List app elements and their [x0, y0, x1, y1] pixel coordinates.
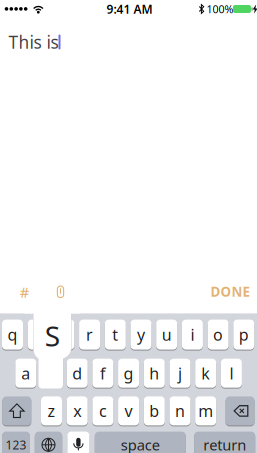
button[interactable] — [0, 0, 257, 453]
staticText: m — [198, 400, 213, 421]
staticText: x — [73, 400, 81, 421]
button[interactable]: t — [0, 0, 257, 453]
staticText: d — [72, 363, 82, 384]
button[interactable]: a — [0, 0, 257, 453]
button[interactable] — [0, 0, 257, 453]
staticText: n — [175, 400, 185, 421]
staticText: 100% — [206, 2, 233, 16]
staticText: l — [229, 363, 233, 384]
staticText: o — [213, 324, 223, 345]
staticText: r — [86, 324, 93, 345]
button[interactable]: o — [0, 0, 257, 453]
button[interactable]: u — [0, 0, 257, 453]
button[interactable]: space — [0, 0, 257, 453]
button[interactable]: v — [0, 0, 257, 453]
staticText: y — [137, 324, 145, 345]
staticText: f — [100, 363, 106, 384]
button[interactable] — [0, 0, 257, 453]
button[interactable]: DONE — [0, 0, 257, 453]
button[interactable]: n — [0, 0, 257, 453]
button[interactable]: p — [0, 0, 257, 453]
staticText: g — [124, 363, 134, 384]
button[interactable]: k — [0, 0, 257, 453]
staticText: z — [47, 400, 55, 421]
staticText: This is — [8, 30, 58, 53]
button[interactable]: d — [0, 0, 257, 453]
button[interactable]: i — [0, 0, 257, 453]
staticText: h — [149, 363, 159, 384]
button[interactable] — [0, 0, 257, 453]
button[interactable]: f — [0, 0, 257, 453]
staticText: 9:41 AM — [106, 1, 152, 17]
button[interactable]: # — [0, 0, 257, 453]
button[interactable] — [0, 0, 257, 453]
button[interactable]: q — [0, 0, 257, 453]
button[interactable]: l — [0, 0, 257, 453]
button[interactable] — [0, 0, 257, 453]
staticText: return — [203, 435, 246, 453]
staticText: t — [112, 324, 118, 345]
staticText: a — [21, 363, 30, 384]
button[interactable]: 123 — [0, 0, 257, 453]
staticText: u — [162, 324, 172, 345]
button[interactable]: g — [0, 0, 257, 453]
button[interactable]: j — [0, 0, 257, 453]
button[interactable] — [0, 0, 257, 453]
staticText: DONE — [210, 283, 249, 300]
button[interactable]: z — [0, 0, 257, 453]
button[interactable]: x — [0, 0, 257, 453]
button[interactable]: m — [0, 0, 257, 453]
staticText: j — [178, 363, 182, 384]
staticText: q — [7, 324, 17, 345]
button[interactable]: y — [0, 0, 257, 453]
staticText: p — [239, 324, 249, 345]
staticText: c — [99, 400, 107, 421]
button[interactable]: r — [0, 0, 257, 453]
staticText: k — [201, 363, 210, 384]
button[interactable]: b — [0, 0, 257, 453]
staticText: space — [121, 435, 160, 453]
button[interactable]: return — [0, 0, 257, 453]
staticText: S — [45, 317, 60, 354]
staticText: i — [190, 324, 194, 345]
button[interactable] — [0, 0, 257, 453]
staticText: 123 — [5, 437, 26, 453]
staticText: # — [20, 282, 29, 302]
staticText: b — [149, 400, 159, 421]
button[interactable]: c — [0, 0, 257, 453]
button[interactable]: h — [0, 0, 257, 453]
staticText: v — [125, 400, 133, 421]
